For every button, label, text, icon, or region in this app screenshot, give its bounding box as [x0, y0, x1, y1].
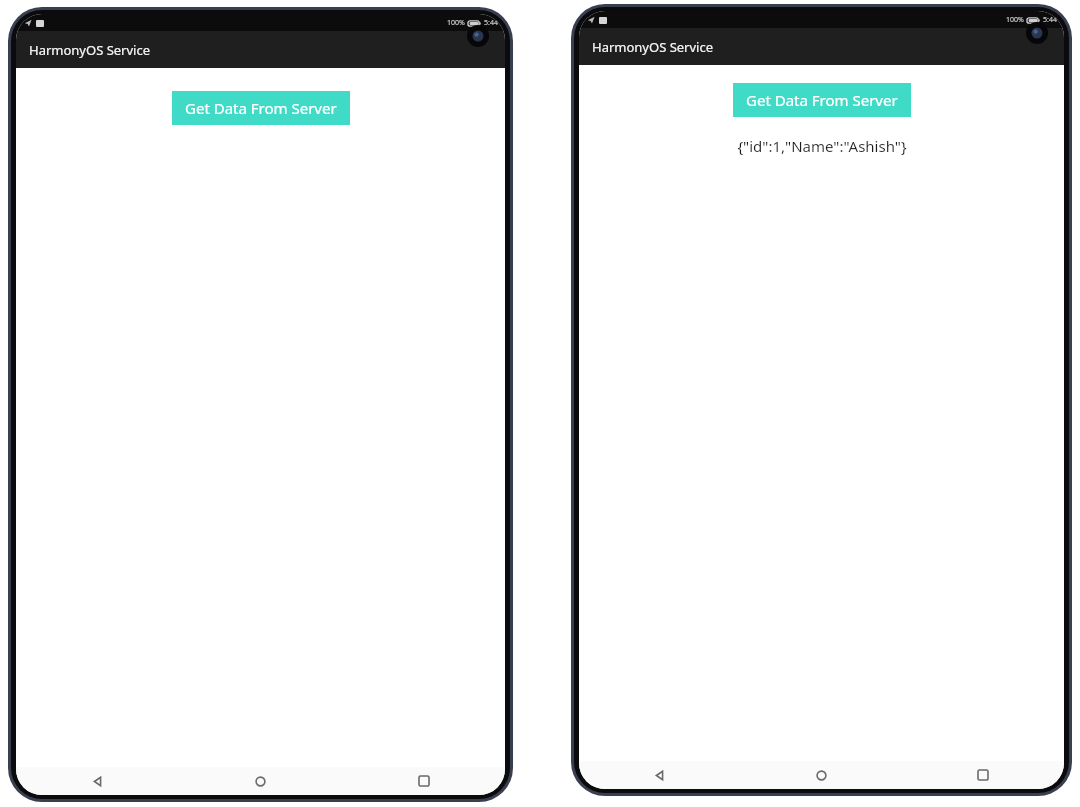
- staticText: 5:44: [1043, 15, 1057, 25]
- button[interactable]: Recents: [902, 761, 1064, 789]
- staticText: 5:44: [484, 18, 498, 28]
- button[interactable]: Get Data From Server: [733, 83, 911, 117]
- staticText: {"id":1,"Name":"Ashish"}: [737, 136, 907, 156]
- staticText: Get Data From Server: [746, 90, 898, 110]
- staticText: HarmonyOS Service: [592, 38, 714, 56]
- staticText: 100%: [447, 18, 465, 28]
- button[interactable]: Home: [179, 767, 342, 795]
- button[interactable]: Back: [579, 761, 740, 789]
- button[interactable]: Home: [740, 761, 902, 789]
- button[interactable]: Get Data From Server: [172, 91, 350, 125]
- button[interactable]: Recents: [342, 767, 505, 795]
- staticText: HarmonyOS Service: [29, 41, 151, 59]
- button[interactable]: Back: [16, 767, 179, 795]
- staticText: 100%: [1006, 15, 1024, 25]
- staticText: Get Data From Server: [185, 98, 337, 118]
